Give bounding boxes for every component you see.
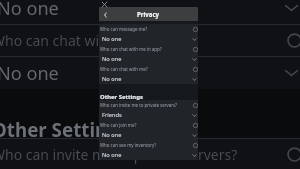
staticText: No one (102, 75, 122, 83)
button[interactable]: Privacy (99, 7, 198, 21)
button[interactable]: Who can see my inventory? (99, 140, 198, 150)
button[interactable]: Who can chat with me? (99, 64, 198, 74)
staticText: No one (102, 55, 122, 63)
staticText: Friends (102, 111, 122, 119)
button[interactable]: Who can chat with me in app? (99, 44, 198, 54)
staticText: Who can chat with me? (100, 66, 148, 72)
button[interactable]: No one (99, 130, 198, 140)
staticText: No one (102, 151, 122, 159)
staticText: Who can invite me to private servers? (100, 102, 178, 108)
staticText: No one (102, 35, 122, 43)
staticText: Who can message me? (100, 26, 148, 32)
button[interactable]: Who can join me? (99, 120, 198, 130)
button[interactable]: No one (99, 34, 198, 44)
staticText: No one (0, 0, 59, 21)
button[interactable]: Who can invite me to private servers? (0, 139, 300, 169)
button[interactable]: Close (100, 0, 109, 9)
button[interactable]: No one (99, 54, 198, 64)
staticText: Who can chat with me in app? (100, 46, 162, 52)
staticText: Who can join me? (100, 122, 137, 128)
button[interactable]: No one (99, 74, 198, 84)
button[interactable]: No one (99, 150, 198, 160)
staticText: Who can invite me to private servers? (0, 145, 238, 164)
button[interactable]: Who can chat with me? (0, 25, 300, 56)
button[interactable]: Who can message me? (99, 24, 198, 34)
staticText: No one (102, 131, 122, 139)
button[interactable]: No one (0, 57, 300, 89)
button[interactable]: Friends (99, 110, 198, 120)
staticText: Privacy (137, 10, 160, 18)
staticText: Who can chat with me? (0, 31, 144, 50)
button[interactable]: Who can invite me to private servers? (99, 100, 198, 110)
staticText: Other Settings (0, 117, 129, 138)
staticText: Other Settings (100, 93, 143, 100)
staticText: Who can see my inventory? (100, 142, 157, 148)
button[interactable]: Back (101, 10, 110, 19)
button[interactable]: No one (0, 0, 300, 24)
staticText: No one (0, 61, 59, 86)
